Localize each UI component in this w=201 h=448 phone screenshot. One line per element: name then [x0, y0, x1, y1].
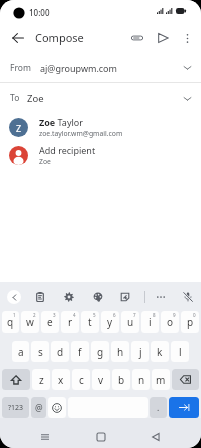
- button[interactable]: k: [151, 341, 169, 362]
- staticText: a: [18, 345, 24, 359]
- staticText: To: [10, 92, 20, 104]
- staticText: q: [7, 315, 14, 329]
- button[interactable]: Themes: [90, 289, 106, 305]
- staticText: From: [10, 62, 31, 74]
- button[interactable]: c: [72, 369, 90, 390]
- button[interactable]: u: [121, 311, 139, 333]
- staticText: r: [68, 315, 73, 329]
- staticText: m: [156, 373, 166, 387]
- button[interactable]: r: [61, 311, 79, 333]
- button[interactable]: l: [171, 341, 189, 362]
- button[interactable]: x: [52, 369, 70, 390]
- button[interactable]: .: [150, 397, 167, 418]
- button[interactable]: More: [153, 289, 169, 305]
- button[interactable]: m: [152, 369, 170, 390]
- button[interactable]: Clipboard: [32, 289, 48, 305]
- staticText: p: [187, 315, 194, 329]
- staticText: u: [127, 315, 134, 329]
- staticText: k: [157, 345, 163, 359]
- button[interactable]: j: [131, 341, 149, 362]
- button[interactable]: n: [132, 369, 150, 390]
- button[interactable]: s: [31, 341, 49, 362]
- staticText: w: [26, 315, 34, 329]
- staticText: Zoe: [27, 92, 44, 105]
- button[interactable]: Z: [0, 113, 201, 141]
- button[interactable]: To: [0, 83, 201, 113]
- staticText: 9: [173, 312, 176, 318]
- staticText: 4: [73, 312, 76, 318]
- staticText: Compose: [35, 30, 84, 45]
- button[interactable]: Add recipient: [0, 141, 201, 169]
- button[interactable]: Stickers: [117, 289, 133, 305]
- staticText: aj@groupwm.com: [40, 62, 117, 74]
- button[interactable]: Backspace: [172, 369, 199, 390]
- button[interactable]: Send: [152, 27, 174, 49]
- staticText: 2: [33, 312, 36, 318]
- staticText: 5: [93, 312, 96, 318]
- staticText: 3: [53, 312, 56, 318]
- button[interactable]: b: [112, 369, 130, 390]
- button[interactable]: @: [31, 397, 46, 418]
- button[interactable]: f: [71, 341, 89, 362]
- staticText: ?123: [8, 403, 24, 413]
- staticText: Zoe: [39, 157, 51, 166]
- staticText: @: [35, 402, 43, 414]
- staticText: n: [138, 373, 145, 387]
- staticText: s: [38, 345, 43, 359]
- staticText: 7: [133, 312, 136, 318]
- staticText: b: [118, 373, 125, 387]
- button[interactable]: w: [21, 311, 39, 333]
- staticText: y: [107, 315, 113, 329]
- button[interactable]: q: [2, 311, 19, 333]
- staticText: i: [149, 315, 152, 329]
- button[interactable]: Shift: [2, 369, 30, 390]
- button[interactable]: z: [32, 369, 50, 390]
- staticText: t: [88, 315, 92, 329]
- staticText: d: [57, 345, 64, 359]
- staticText: 1: [13, 312, 16, 318]
- staticText: h: [117, 345, 124, 359]
- staticText: 0: [193, 312, 196, 318]
- staticText: e: [47, 315, 53, 329]
- button[interactable]: i: [141, 311, 159, 333]
- button[interactable]: From: [0, 53, 201, 82]
- button[interactable]: Home: [90, 426, 112, 448]
- button[interactable]: Back: [145, 426, 167, 448]
- staticText: l: [179, 345, 182, 359]
- button[interactable]: d: [51, 341, 69, 362]
- staticText: x: [58, 373, 64, 387]
- staticText: v: [98, 373, 104, 387]
- button[interactable]: Back: [7, 27, 29, 49]
- staticText: 10:00: [29, 7, 50, 18]
- button[interactable]: h: [111, 341, 129, 362]
- button[interactable]: o: [161, 311, 179, 333]
- button[interactable]: y: [101, 311, 119, 333]
- button[interactable]: Emoji: [48, 397, 66, 418]
- button[interactable]: More options: [177, 28, 197, 48]
- button[interactable]: t: [81, 311, 99, 333]
- button[interactable]: Close toolbar: [7, 290, 21, 304]
- staticText: 6: [113, 312, 116, 318]
- staticText: g: [97, 345, 104, 359]
- staticText: Z: [16, 122, 22, 134]
- staticText: Add recipient: [39, 144, 96, 156]
- button[interactable]: Recents: [34, 426, 56, 448]
- button[interactable]: Mic off: [180, 289, 196, 305]
- staticText: .: [157, 402, 160, 414]
- staticText: Zoe Taylor: [39, 116, 83, 128]
- button[interactable]: ?123: [2, 397, 29, 418]
- button[interactable]: Settings: [61, 289, 77, 305]
- button[interactable]: p: [181, 311, 199, 333]
- button[interactable]: v: [92, 369, 110, 390]
- button[interactable]: g: [91, 341, 109, 362]
- button[interactable]: Enter: [169, 397, 199, 418]
- staticText: c: [79, 373, 84, 387]
- staticText: zoe.taylor.wm@gmail.com: [39, 129, 123, 138]
- staticText: o: [167, 315, 174, 329]
- staticText: f: [78, 345, 82, 359]
- button[interactable]: a: [12, 341, 29, 362]
- staticText: 8: [153, 312, 156, 318]
- button[interactable]: e: [41, 311, 59, 333]
- button[interactable]: Attach file: [126, 27, 148, 49]
